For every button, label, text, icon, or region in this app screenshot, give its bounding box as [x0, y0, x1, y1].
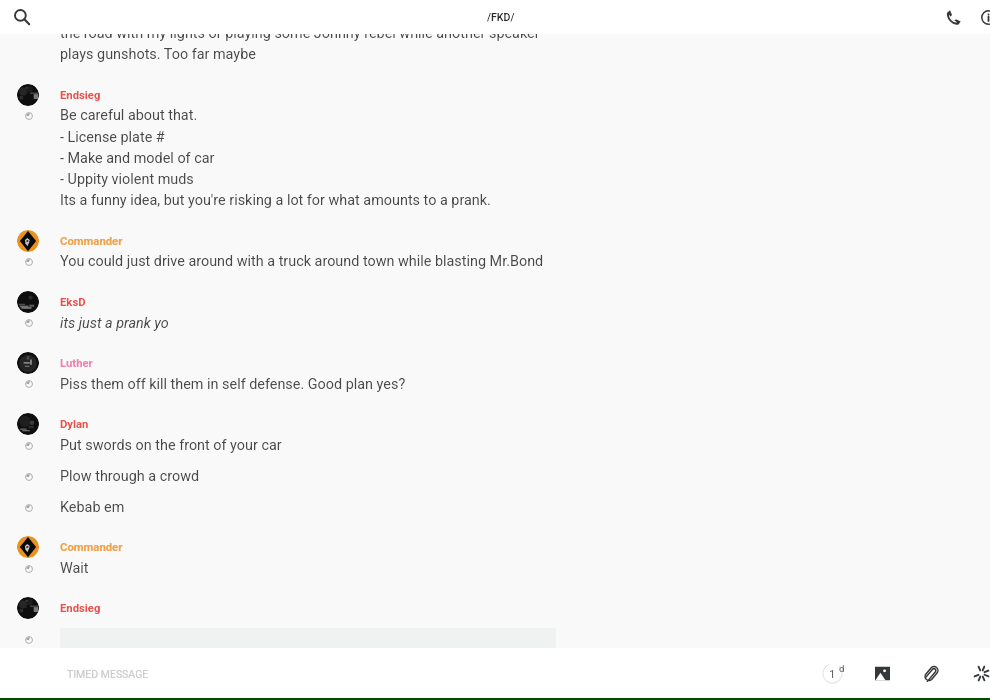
button[interactable]: Search — [8, 3, 36, 31]
staticText: Endsieg — [60, 602, 101, 615]
staticText: Plow through a crowd — [60, 468, 200, 485]
staticText: Put swords on the front of your car — [60, 437, 282, 454]
staticText: d — [839, 663, 845, 674]
button[interactable]: Send photo — [861, 648, 903, 698]
staticText: TIMED MESSAGE — [67, 668, 149, 680]
button[interactable]: Dylan avatar — [17, 413, 39, 435]
staticText: - Make and model of car — [60, 150, 215, 167]
staticText: Luther — [60, 357, 93, 370]
staticText: You could just drive around with a truck… — [60, 253, 544, 270]
staticText: /FKD/ — [487, 11, 515, 23]
button[interactable]: Attach file — [910, 648, 952, 698]
staticText: 1 — [829, 667, 836, 680]
staticText: Commander — [60, 541, 123, 554]
button[interactable]: Luther avatar — [17, 352, 39, 374]
button[interactable]: Info — [973, 2, 990, 32]
staticText: EksD — [60, 296, 86, 309]
staticText: its just a prank yo — [60, 315, 169, 332]
staticText: Dylan — [60, 418, 89, 431]
staticText: plays gunshots. Too far maybe — [60, 46, 256, 63]
staticText: Piss them off kill them in self defense.… — [60, 376, 406, 393]
button[interactable]: EksD avatar — [17, 291, 39, 313]
button[interactable]: Effects — [960, 648, 990, 698]
staticText: Kebab em — [60, 499, 125, 516]
staticText: - License plate # — [60, 129, 165, 146]
button[interactable]: Timed message duration — [811, 648, 853, 698]
button[interactable]: Commander avatar — [17, 536, 39, 558]
staticText: Wait — [60, 560, 89, 577]
staticText: - Uppity violent muds — [60, 171, 194, 188]
staticText: Be careful about that. — [60, 107, 198, 124]
button[interactable]: Endsieg avatar — [17, 597, 39, 619]
staticText: Endsieg — [60, 89, 101, 102]
staticText: Its a funny idea, but you're risking a l… — [60, 192, 491, 209]
button[interactable]: Call — [938, 2, 968, 32]
staticText: the road with my lights or playing some … — [60, 25, 540, 42]
button[interactable]: Endsieg avatar — [17, 84, 39, 106]
staticText: Commander — [60, 235, 123, 248]
button[interactable]: Commander avatar — [17, 230, 39, 252]
